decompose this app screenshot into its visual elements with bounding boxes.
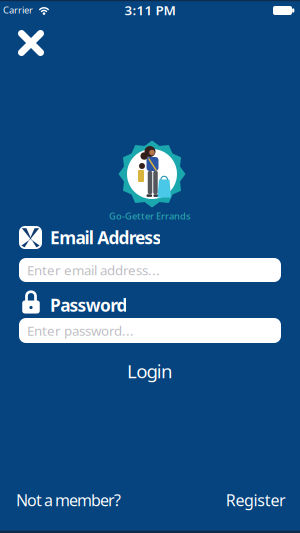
staticText: Not a member? [16, 489, 121, 511]
staticText: Enter password... [27, 322, 134, 339]
staticText: Enter email address... [27, 261, 160, 279]
staticText: Carrier [3, 4, 33, 16]
button[interactable]: Enter password [19, 318, 281, 343]
staticText: Go-Getter Errands [109, 210, 191, 222]
staticText: Email Address [50, 226, 161, 249]
button[interactable]: Register [226, 489, 286, 511]
staticText: Register [226, 489, 286, 511]
button[interactable]: Enter email address [19, 258, 281, 282]
button[interactable]: Close [9, 21, 53, 65]
staticText: Password [50, 293, 127, 316]
staticText: Login [127, 359, 173, 383]
staticText: 3:11 PM [124, 1, 175, 19]
button[interactable]: Login [19, 357, 281, 385]
